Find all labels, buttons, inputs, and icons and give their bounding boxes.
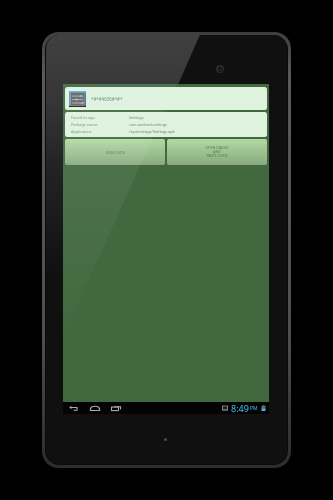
staticText: *#*#4636#*#* — [91, 96, 123, 102]
button[interactable]: Home — [88, 402, 102, 414]
button[interactable]: *#*#4636#*#* — [65, 87, 267, 110]
staticText: Found in app: — [71, 115, 129, 120]
staticText: PM — [250, 405, 258, 412]
staticText: Application: — [71, 129, 129, 134]
button[interactable]: OPEN DIALER AND PASTE CODE — [167, 139, 267, 165]
button[interactable]: Back — [67, 402, 81, 414]
button[interactable]: Recent apps — [109, 402, 123, 414]
staticText: RUN CODE — [106, 150, 125, 155]
staticText: 8:49 — [231, 402, 249, 414]
staticText: /system/app/Settings.apk — [129, 129, 175, 134]
button[interactable]: RUN CODE — [65, 139, 165, 165]
staticText: com.android.settings — [129, 122, 167, 127]
staticText: Settings — [129, 115, 144, 120]
staticText: Package name: — [71, 122, 129, 127]
staticText: OPEN DIALER AND PASTE CODE — [205, 145, 229, 159]
